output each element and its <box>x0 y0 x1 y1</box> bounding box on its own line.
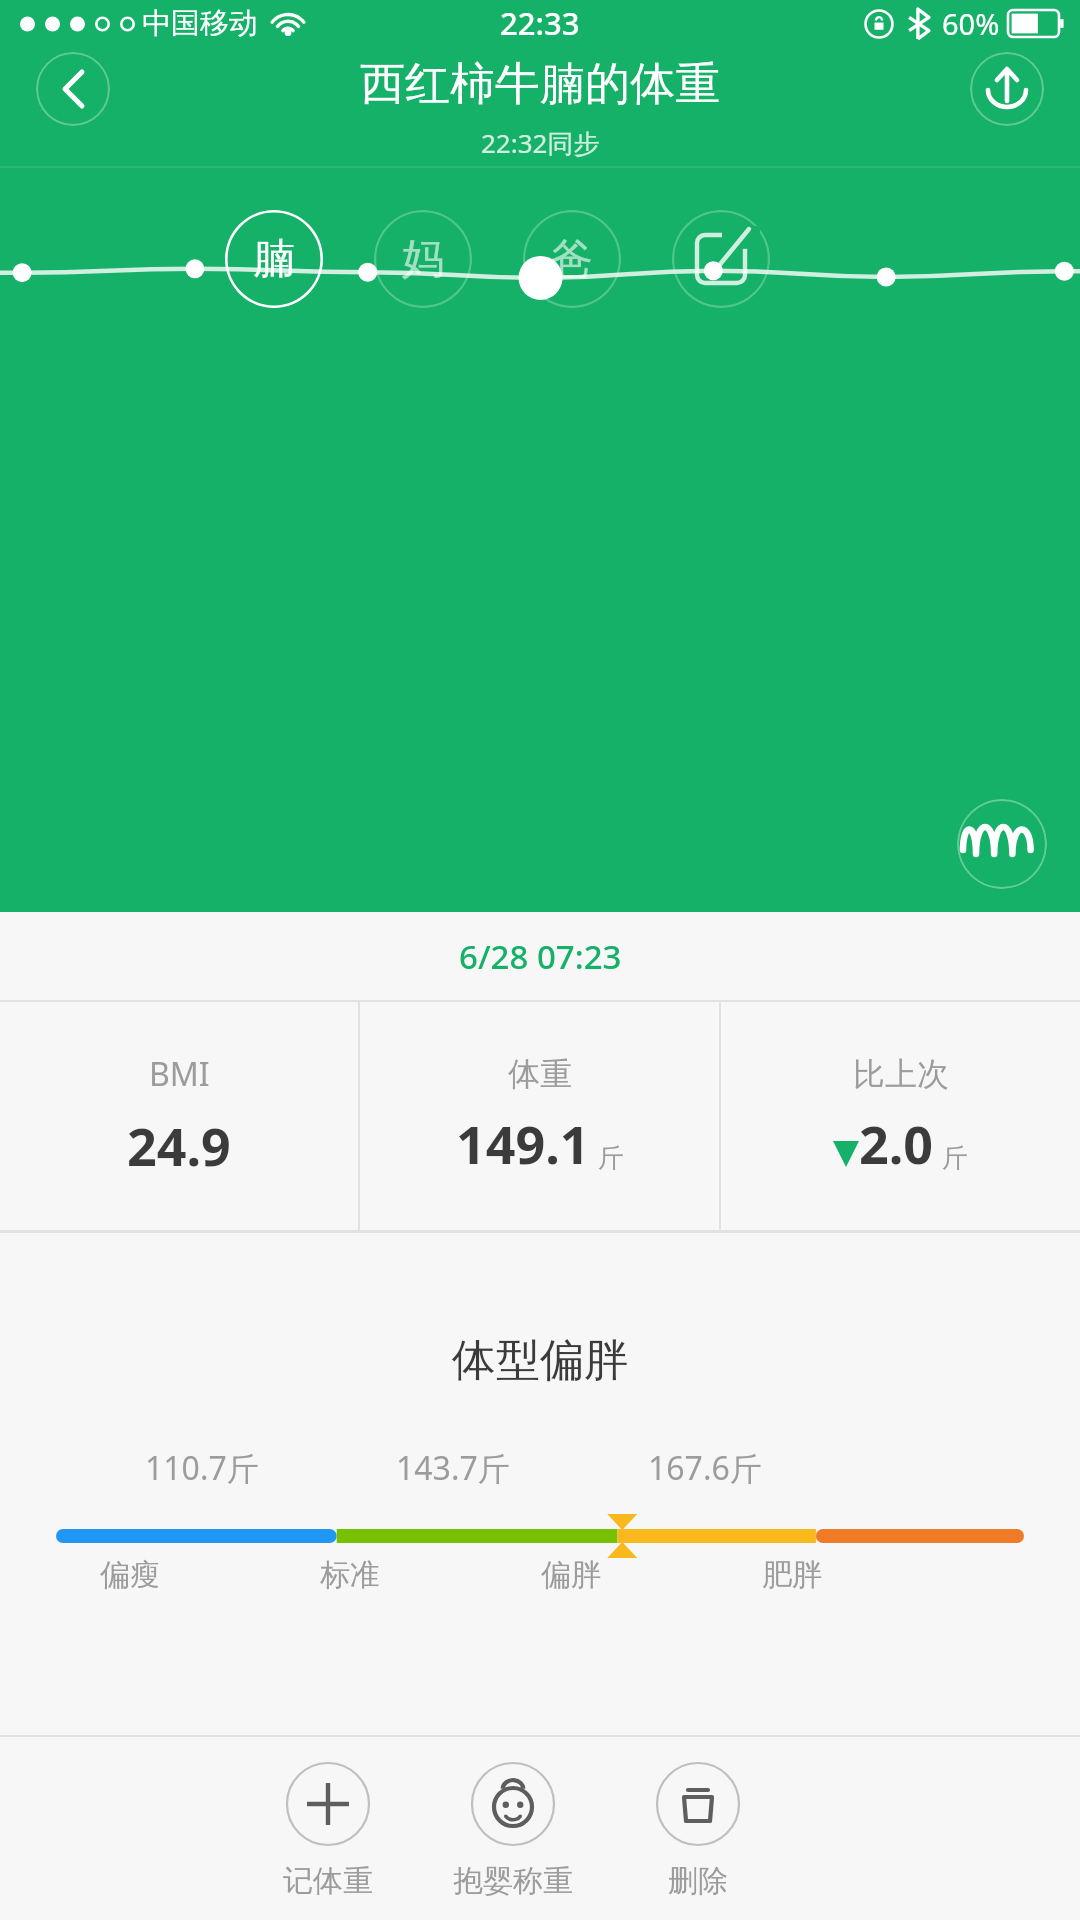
staticText: 抱婴称重 <box>453 1862 573 1900</box>
button[interactable]: 爸 <box>523 210 621 308</box>
staticText: 体型偏胖 <box>452 1333 628 1388</box>
button[interactable]: Share <box>970 52 1044 126</box>
staticText: 删除 <box>668 1862 728 1900</box>
staticText: BMI <box>149 1052 210 1096</box>
staticText: 爸 <box>551 233 593 286</box>
staticText: 2.0 <box>859 1108 934 1179</box>
staticText: 中国移动 <box>142 5 258 42</box>
button[interactable]: 妈 <box>374 210 472 308</box>
staticText: 记体重 <box>283 1862 373 1900</box>
staticText: 24.9 <box>127 1110 231 1181</box>
staticText: 偏胖 <box>541 1556 762 1594</box>
staticText: 110.7斤 <box>145 1446 396 1490</box>
button[interactable]: 比上次 <box>721 1002 1080 1230</box>
button[interactable]: 体重 <box>360 1002 719 1230</box>
staticText: 西红柿牛腩的体重 <box>360 56 720 113</box>
staticText: 标准 <box>320 1556 541 1594</box>
button[interactable]: 删除 <box>618 1762 778 1900</box>
staticText: 22:33 <box>500 2 580 44</box>
staticText: 167.6斤 <box>648 1446 900 1490</box>
staticText: 妈 <box>402 233 444 286</box>
button[interactable]: Back <box>36 52 110 126</box>
button[interactable]: 抱婴称重 <box>433 1762 593 1900</box>
staticText: 斤 <box>598 1142 624 1175</box>
staticText: 143.7斤 <box>396 1446 648 1490</box>
button[interactable]: BMI <box>0 1002 358 1230</box>
staticText: 斤 <box>942 1142 968 1175</box>
staticText: 22:32同步 <box>481 125 600 161</box>
staticText: 比上次 <box>853 1054 949 1094</box>
button[interactable]: 记体重 <box>248 1762 408 1900</box>
staticText: 肥胖 <box>762 1556 950 1594</box>
staticText: 腩 <box>253 233 295 286</box>
staticText: 6/28 07:23 <box>459 934 622 979</box>
staticText: 149.1 <box>456 1108 590 1179</box>
button[interactable]: 腩 <box>225 210 323 308</box>
staticText: 60% <box>942 4 1000 43</box>
staticText: 偏瘦 <box>100 1556 320 1594</box>
button[interactable]: Body composition <box>957 799 1047 889</box>
staticText: 体重 <box>508 1054 572 1094</box>
button[interactable]: Add member <box>672 210 770 308</box>
